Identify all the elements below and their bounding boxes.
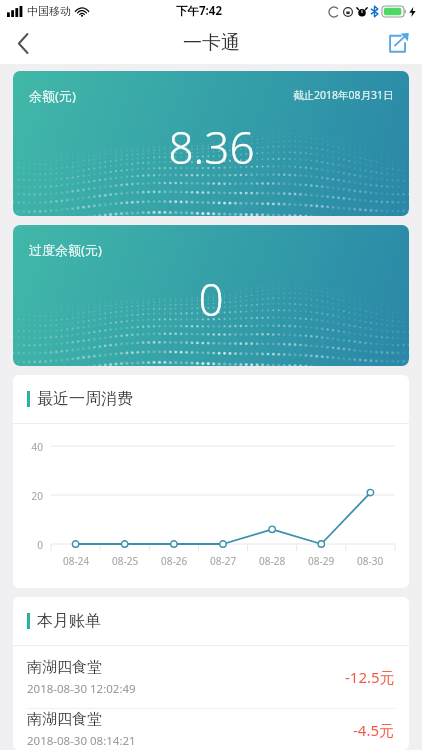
button[interactable]: Back — [0, 22, 46, 64]
staticText: 下午7:42 — [176, 3, 222, 19]
staticText: 08-24 — [63, 554, 90, 568]
staticText: 40 — [21, 440, 43, 454]
staticText: 0 — [198, 269, 224, 329]
staticText: 20 — [21, 489, 43, 503]
staticText: 08-27 — [210, 554, 237, 568]
staticText: 08-30 — [357, 554, 384, 568]
staticText: 08-26 — [161, 554, 188, 568]
staticText: 最近一周消费 — [37, 389, 133, 409]
staticText: 余额(元) — [29, 87, 76, 105]
staticText: 南湖四食堂 — [27, 658, 102, 677]
staticText: 08-28 — [259, 554, 286, 568]
button[interactable]: 过度余额(元) — [13, 225, 409, 366]
staticText: 2018-08-30 12:02:49 — [27, 681, 136, 697]
staticText: -12.5元 — [345, 667, 395, 687]
staticText: 08-29 — [308, 554, 335, 568]
staticText: 2018-08-30 08:14:21 — [27, 733, 136, 749]
staticText: 截止2018年08月31日 — [293, 88, 394, 102]
button[interactable]: Share — [374, 22, 422, 64]
staticText: 0 — [21, 538, 43, 552]
staticText: 中国移动 — [27, 4, 71, 18]
button[interactable]: 余额(元) — [13, 71, 409, 216]
staticText: 过度余额(元) — [29, 241, 102, 259]
button[interactable]: 南湖四食堂 — [13, 646, 409, 709]
button[interactable]: 南湖四食堂 — [13, 709, 409, 750]
staticText: 08-25 — [112, 554, 139, 568]
staticText: -4.5元 — [353, 720, 395, 740]
staticText: 一卡通 — [183, 31, 240, 55]
staticText: 8.36 — [168, 117, 255, 177]
staticText: 本月账单 — [37, 611, 101, 631]
staticText: 南湖四食堂 — [27, 710, 102, 729]
